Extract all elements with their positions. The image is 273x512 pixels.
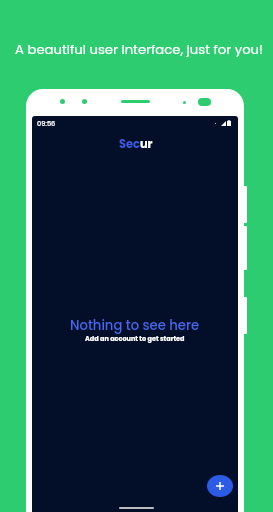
staticText: Secur <box>119 136 153 152</box>
staticText: Nothing to see here <box>70 316 200 334</box>
staticText: Add an account to get started <box>85 334 185 343</box>
button[interactable]: Add account <box>207 475 233 497</box>
staticText: 09:56 <box>37 119 56 128</box>
staticText: A beautiful user interface, just for you… <box>5 40 273 58</box>
